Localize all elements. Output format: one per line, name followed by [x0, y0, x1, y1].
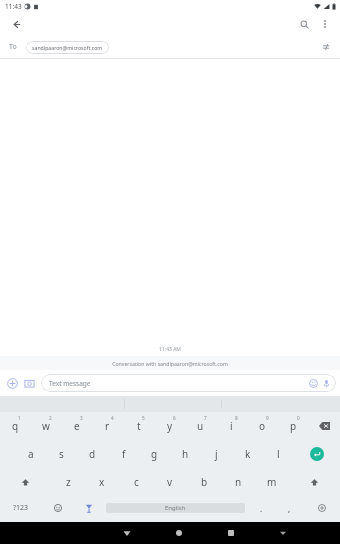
- button[interactable]: w: [30, 412, 61, 440]
- button[interactable]: Hide keyboard: [257, 522, 309, 544]
- staticText: e: [74, 419, 80, 433]
- staticText: x: [99, 475, 105, 489]
- button[interactable]: .: [247, 496, 275, 520]
- staticText: h: [182, 447, 189, 461]
- staticText: 7: [204, 415, 207, 421]
- staticText: c: [134, 475, 139, 489]
- staticText: n: [235, 475, 242, 489]
- button[interactable]: Text message: [41, 374, 336, 392]
- button[interactable]: v: [153, 468, 187, 496]
- staticText: 2: [49, 415, 52, 421]
- button[interactable]: n: [221, 468, 255, 496]
- button[interactable]: e: [61, 412, 92, 440]
- staticText: o: [259, 419, 266, 433]
- staticText: 11:43 AM: [159, 346, 181, 353]
- staticText: English: [165, 504, 186, 512]
- button[interactable]: Backspace: [309, 412, 340, 440]
- staticText: 8: [235, 415, 238, 421]
- staticText: d: [89, 447, 96, 461]
- button[interactable]: Recent apps: [205, 522, 257, 544]
- staticText: v: [167, 475, 173, 489]
- button[interactable]: i: [216, 412, 247, 440]
- button[interactable]: a: [15, 440, 46, 468]
- button[interactable]: m: [255, 468, 289, 496]
- button[interactable]: t: [123, 412, 154, 440]
- button[interactable]: Enter: [294, 440, 340, 468]
- button[interactable]: l: [263, 440, 294, 468]
- button[interactable]: g: [139, 440, 170, 468]
- button[interactable]: Home: [153, 522, 205, 544]
- staticText: 9: [266, 415, 269, 421]
- button[interactable]: c: [119, 468, 153, 496]
- button[interactable]: More options: [315, 14, 335, 34]
- staticText: t: [137, 419, 141, 433]
- button[interactable]: Shift right: [289, 468, 340, 496]
- button[interactable]: ,: [275, 496, 303, 520]
- staticText: 1: [18, 415, 21, 421]
- button[interactable]: x: [85, 468, 119, 496]
- staticText: p: [290, 419, 297, 433]
- button[interactable]: Back: [100, 522, 153, 544]
- staticText: ,: [288, 503, 291, 514]
- button[interactable]: Camera: [22, 376, 37, 391]
- staticText: l: [277, 447, 280, 461]
- staticText: 5: [142, 415, 145, 421]
- staticText: i: [230, 419, 233, 433]
- staticText: y: [167, 419, 173, 433]
- button[interactable]: Translate: [73, 496, 104, 520]
- button[interactable]: sandipaaron@microsoft.com: [26, 41, 109, 54]
- staticText: 4: [111, 415, 114, 421]
- staticText: j: [215, 447, 218, 461]
- staticText: r: [105, 419, 110, 433]
- button[interactable]: d: [77, 440, 108, 468]
- button[interactable]: Back: [6, 14, 26, 34]
- button[interactable]: Add attachment: [5, 376, 20, 391]
- staticText: u: [197, 419, 204, 433]
- button[interactable]: u: [185, 412, 216, 440]
- staticText: g: [151, 447, 158, 461]
- button[interactable]: ?123: [0, 496, 42, 520]
- button[interactable]: Emoji keyboard: [42, 496, 73, 520]
- staticText: 0: [297, 415, 300, 421]
- button[interactable]: y: [154, 412, 185, 440]
- button[interactable]: Voice input: [320, 377, 333, 390]
- button[interactable]: Emoji: [307, 377, 320, 390]
- staticText: 6: [173, 415, 176, 421]
- button[interactable]: b: [187, 468, 221, 496]
- staticText: 3: [80, 415, 83, 421]
- button[interactable]: j: [201, 440, 232, 468]
- button[interactable]: q: [0, 412, 30, 440]
- button[interactable]: f: [108, 440, 139, 468]
- staticText: sandipaaron@microsoft.com: [32, 44, 103, 51]
- button[interactable]: r: [92, 412, 123, 440]
- button[interactable]: p: [278, 412, 309, 440]
- button[interactable]: o: [247, 412, 278, 440]
- staticText: f: [122, 447, 126, 461]
- staticText: .: [260, 503, 263, 514]
- button[interactable]: Shift: [0, 468, 51, 496]
- staticText: s: [59, 447, 64, 461]
- button[interactable]: s: [46, 440, 77, 468]
- button[interactable]: Keyboard settings: [303, 496, 340, 520]
- staticText: b: [201, 475, 208, 489]
- staticText: z: [66, 475, 71, 489]
- button[interactable]: z: [51, 468, 85, 496]
- button[interactable]: Add recipient: [317, 38, 335, 56]
- staticText: Text message: [49, 379, 91, 388]
- button[interactable]: Search: [293, 13, 315, 35]
- staticText: ?123: [13, 503, 29, 513]
- button[interactable]: English: [106, 503, 245, 513]
- staticText: 11:43: [5, 2, 22, 11]
- button[interactable]: h: [170, 440, 201, 468]
- staticText: Conversation with sandipaaron@microsoft.…: [112, 360, 228, 367]
- button[interactable]: k: [232, 440, 263, 468]
- staticText: w: [42, 419, 50, 433]
- staticText: a: [28, 447, 34, 461]
- staticText: q: [12, 419, 19, 433]
- button[interactable]: To: [4, 38, 22, 56]
- staticText: To: [9, 42, 17, 52]
- staticText: k: [245, 447, 251, 461]
